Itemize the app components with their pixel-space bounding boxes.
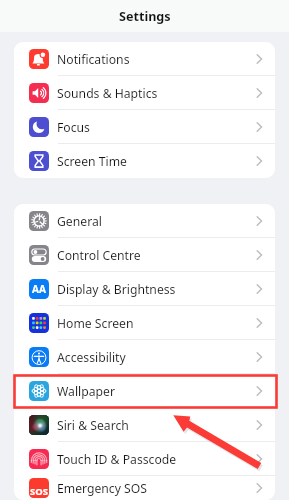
button[interactable]: Touch ID & Passcode (14, 442, 275, 476)
staticText: Wallpaper (57, 383, 115, 400)
button[interactable]: AA (14, 272, 275, 306)
button[interactable]: Accessibility (14, 340, 275, 374)
button[interactable]: Screen Time (14, 144, 275, 178)
staticText: AA (32, 282, 46, 296)
button[interactable]: Siri & Search (14, 408, 275, 442)
staticText: Siri & Search (57, 417, 129, 434)
staticText: Notifications (57, 51, 130, 68)
button[interactable]: General (14, 204, 275, 238)
staticText: Focus (57, 119, 90, 136)
button[interactable]: Notifications (14, 42, 275, 76)
staticText: Touch ID & Passcode (57, 451, 177, 468)
button[interactable]: Sounds & Haptics (14, 76, 275, 110)
staticText: SOS (30, 485, 48, 498)
button[interactable]: SOS (14, 476, 275, 500)
button[interactable]: Control Centre (14, 238, 275, 272)
staticText: General (57, 213, 102, 230)
staticText: Sounds & Haptics (57, 85, 158, 102)
staticText: Accessibility (57, 349, 126, 366)
staticText: Home Screen (57, 315, 134, 332)
staticText: Settings (119, 8, 171, 25)
staticText: Screen Time (57, 153, 127, 170)
staticText: Control Centre (57, 247, 141, 264)
button[interactable]: Focus (14, 110, 275, 144)
staticText: Emergency SOS (57, 480, 147, 497)
button[interactable]: Wallpaper (14, 374, 275, 408)
staticText: Display & Brightness (57, 281, 176, 298)
button[interactable]: Home Screen (14, 306, 275, 340)
